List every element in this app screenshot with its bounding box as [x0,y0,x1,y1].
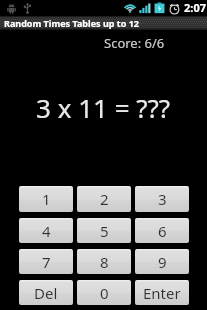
staticText: 9 [158,252,167,272]
staticText: 3 x 11 = ??? [36,90,171,125]
staticText: 2:07 [184,0,206,15]
other: Wi-Fi [124,3,136,14]
other: USB connected [24,3,31,14]
button[interactable]: 5 [77,218,131,243]
button[interactable]: 7 [19,249,73,274]
staticText: 7 [42,252,51,272]
button[interactable]: 6 [135,218,189,243]
staticText: Random Times Tables up to 12 [4,17,139,29]
staticText: Score: 6/6 [104,34,165,52]
staticText: 1 [42,189,51,209]
staticText: 0 [100,283,109,303]
staticText: Del [34,283,58,303]
staticText: Enter [143,283,181,303]
other: USB debugging enabled [7,4,16,14]
button[interactable]: 8 [77,249,131,274]
staticText: 4 [42,221,51,241]
other: Battery charging [154,2,165,14]
staticText: 6 [158,221,167,241]
button[interactable]: 0 [77,280,131,305]
button[interactable]: 2 [77,186,131,212]
other: Alarm set [169,3,180,14]
button[interactable]: 9 [135,249,189,274]
other: Mobile signal [139,3,150,14]
staticText: 5 [100,221,109,241]
button[interactable]: 4 [19,218,73,243]
button[interactable]: 1 [19,186,73,212]
button[interactable]: Enter [135,280,189,305]
staticText: 2 [100,189,109,209]
staticText: 3 [158,189,167,209]
staticText: 8 [100,252,109,272]
button[interactable]: Del [19,280,73,305]
button[interactable]: 3 [135,186,189,212]
